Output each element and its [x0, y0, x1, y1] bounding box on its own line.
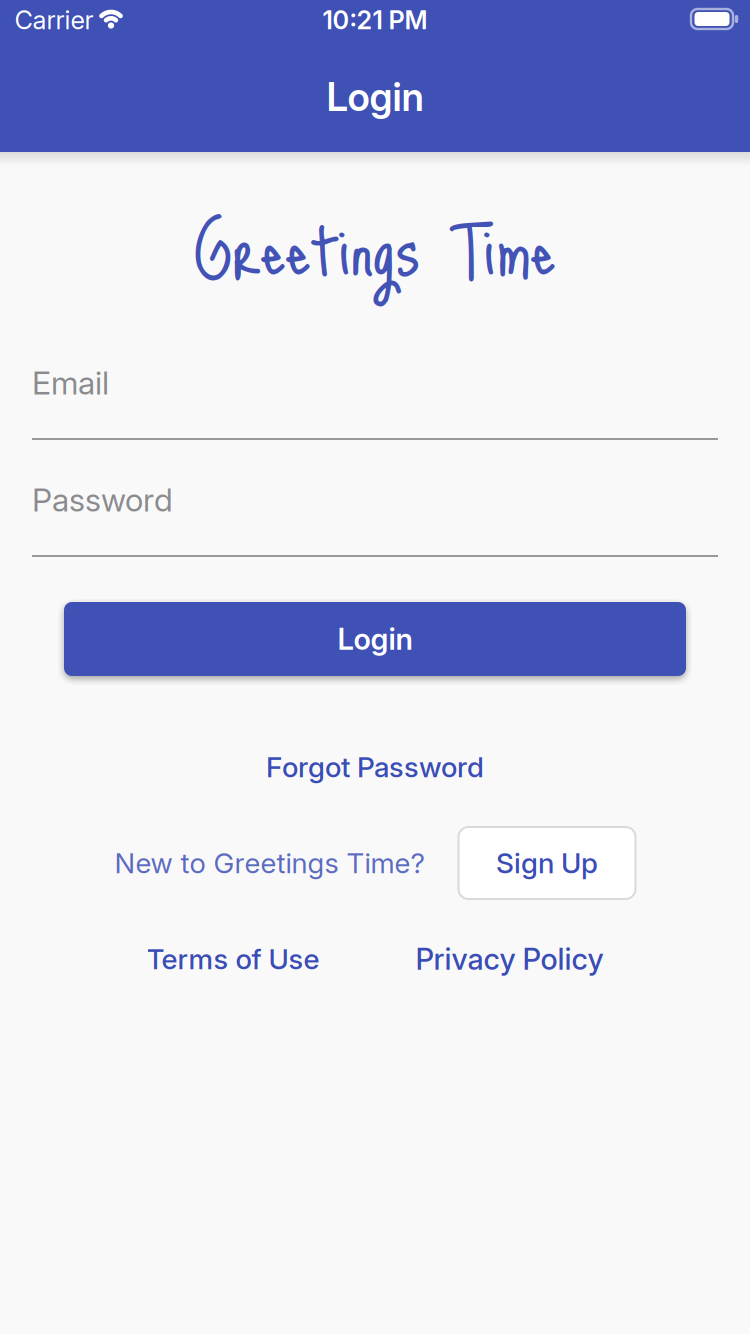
button[interactable]: Login — [64, 602, 686, 676]
staticText: 10:21 PM — [322, 5, 427, 35]
staticText: Greetings Time — [194, 189, 556, 309]
staticText: Email — [32, 364, 109, 402]
button[interactable]: Password — [32, 481, 718, 557]
staticText: Carrier — [14, 5, 93, 35]
button[interactable]: Email — [32, 364, 718, 440]
button[interactable]: Forgot Password — [266, 750, 484, 783]
staticText: New to Greetings Time? — [114, 846, 424, 879]
button[interactable]: Privacy Policy — [415, 942, 603, 976]
staticText: Forgot Password — [266, 750, 484, 783]
staticText: Privacy Policy — [415, 942, 603, 976]
button[interactable]: Terms of Use — [146, 942, 319, 975]
staticText: Sign Up — [496, 846, 598, 879]
staticText: Password — [32, 481, 173, 519]
button[interactable]: Sign Up — [458, 827, 635, 899]
staticText: Login — [337, 622, 412, 656]
staticText: Login — [326, 74, 423, 120]
staticText: Terms of Use — [146, 942, 319, 975]
